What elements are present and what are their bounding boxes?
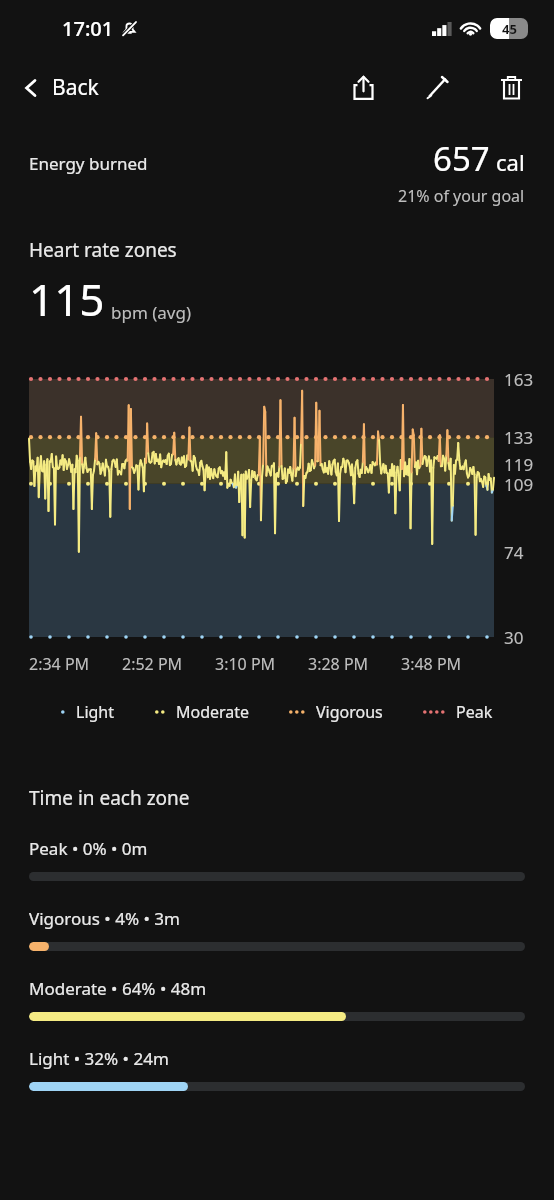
staticText: Light: [76, 701, 115, 723]
button[interactable]: Edit: [412, 62, 462, 112]
staticText: 3:48 PM: [401, 653, 462, 675]
button[interactable]: Vigorous: [287, 697, 385, 727]
button[interactable]: Peak: [421, 697, 495, 727]
button[interactable]: Heart rate zones: [0, 237, 554, 329]
staticText: Heart rate zones: [29, 237, 177, 263]
staticText: 657: [433, 136, 490, 181]
staticText: 74: [504, 541, 524, 564]
button[interactable]: Moderate • 64% • 48m: [0, 977, 554, 1021]
button[interactable]: Share: [338, 62, 388, 112]
staticText: 119: [504, 453, 534, 476]
staticText: Back: [52, 73, 99, 102]
staticText: cal: [496, 147, 525, 177]
staticText: bpm (avg): [111, 301, 192, 324]
staticText: Light • 32% • 24m: [29, 1047, 169, 1070]
staticText: 17:01: [62, 15, 114, 42]
staticText: 21% of your goal: [398, 185, 525, 207]
staticText: Energy burned: [29, 152, 148, 175]
staticText: 163: [504, 368, 534, 391]
staticText: Vigorous: [316, 701, 383, 723]
staticText: Peak: [456, 701, 493, 723]
button[interactable]: Light • 32% • 24m: [0, 1047, 554, 1091]
staticText: 109: [504, 473, 534, 496]
staticText: Moderate: [176, 701, 250, 723]
button[interactable]: Peak • 0% • 0m: [0, 837, 554, 881]
staticText: Time in each zone: [29, 785, 190, 811]
staticText: 2:34 PM: [29, 653, 90, 675]
staticText: Vigorous • 4% • 3m: [29, 907, 180, 930]
staticText: 115: [29, 269, 105, 329]
button[interactable]: Vigorous • 4% • 3m: [0, 907, 554, 951]
button[interactable]: Back: [14, 67, 105, 108]
staticText: 3:28 PM: [308, 653, 369, 675]
staticText: 30: [504, 626, 524, 649]
staticText: 2:52 PM: [122, 653, 183, 675]
button[interactable]: Light: [59, 697, 117, 727]
staticText: 133: [504, 426, 534, 449]
staticText: Peak • 0% • 0m: [29, 837, 148, 860]
button[interactable]: Delete: [486, 62, 536, 112]
button[interactable]: Energy burned: [0, 136, 554, 207]
staticText: 45: [502, 20, 517, 38]
staticText: 3:10 PM: [215, 653, 276, 675]
staticText: Moderate • 64% • 48m: [29, 977, 207, 1000]
button[interactable]: Moderate: [153, 697, 252, 727]
